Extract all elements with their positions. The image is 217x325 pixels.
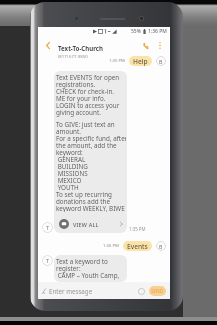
staticText: 1:36 PM — [148, 28, 167, 35]
button[interactable]: Emoji — [137, 287, 145, 295]
staticText: 1:35 PM — [109, 58, 125, 64]
staticText: VIEW ALL — [73, 221, 99, 228]
button[interactable]: Events — [123, 241, 152, 251]
button[interactable]: Call — [139, 36, 153, 55]
staticText: Text-To-Church — [58, 44, 103, 52]
button[interactable]: More options — [153, 36, 166, 55]
staticText: T — [46, 224, 50, 232]
staticText: Events — [127, 242, 148, 251]
staticText: T — [46, 257, 50, 265]
button[interactable]: Attach file — [40, 287, 48, 295]
staticText: (817) 677-9850 — [58, 53, 88, 59]
staticText: Text EVENTS for open registrations. CHEC… — [56, 73, 120, 116]
button[interactable]: Back — [41, 36, 55, 55]
button[interactable]: VIEW ALL — [56, 217, 126, 231]
staticText: B — [159, 243, 163, 250]
button[interactable]: Help — [129, 56, 152, 66]
staticText: 1:36 PM — [103, 243, 119, 249]
staticText: Help — [133, 57, 148, 66]
staticText: Text a keyword to register: CAMP – Youth… — [56, 257, 120, 280]
staticText: 55% — [131, 28, 141, 35]
staticText: 1:35 PM — [129, 226, 146, 232]
button[interactable]: SEND — [149, 286, 166, 296]
staticText: Enter message — [49, 287, 93, 295]
staticText: SEND — [151, 288, 164, 294]
staticText: To GIVE: just text an amount. For a spec… — [56, 120, 126, 212]
staticText: B — [159, 58, 163, 65]
